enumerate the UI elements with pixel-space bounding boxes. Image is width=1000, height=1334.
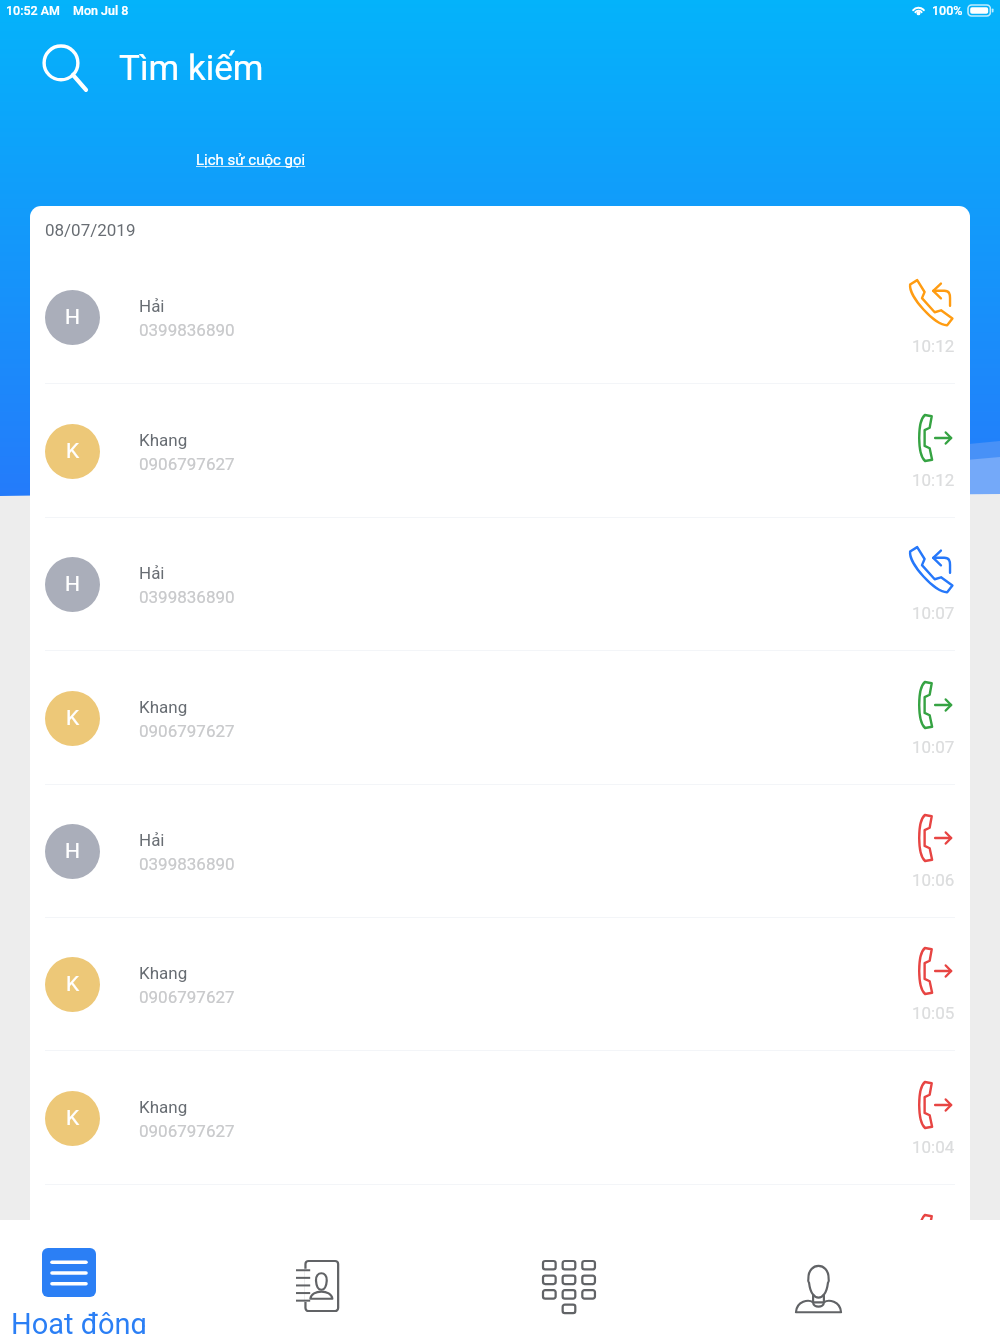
staticText: Khang [139, 430, 188, 450]
button[interactable]: K [30, 652, 970, 785]
staticText: Khang [139, 963, 188, 983]
button[interactable]: K [30, 1185, 970, 1220]
button[interactable]: Profile [795, 1220, 842, 1334]
staticText: H [65, 572, 80, 597]
staticText: Hải [139, 830, 165, 850]
button[interactable]: H [30, 785, 970, 918]
staticText: 0906797627 [139, 1121, 235, 1141]
staticText: 10:12 [912, 470, 955, 490]
button[interactable]: Keypad [543, 1220, 595, 1334]
staticText: Lịch sử cuộc gọi [196, 151, 306, 169]
button[interactable]: Lịch sử cuộc gọi [196, 151, 306, 169]
staticText: 0906797627 [139, 987, 235, 1007]
staticText: 10:52 AM [6, 3, 61, 18]
button[interactable]: H [30, 518, 970, 651]
staticText: Hải [139, 296, 165, 316]
button[interactable]: Tìm kiếm [0, 33, 1000, 103]
staticText: K [66, 1106, 80, 1131]
staticText: 10:07 [912, 603, 955, 623]
button[interactable]: H [30, 251, 970, 384]
staticText: Hải [139, 563, 165, 583]
staticText: 10:05 [912, 1003, 955, 1023]
staticText: Khang [139, 697, 188, 717]
staticText: H [65, 305, 80, 330]
staticText: 10:07 [912, 737, 955, 757]
staticText: 10:06 [912, 870, 955, 890]
staticText: H [65, 839, 80, 864]
staticText: K [66, 972, 80, 997]
staticText: 100% [932, 3, 963, 18]
staticText: 10:04 [912, 1137, 955, 1157]
staticText: 08/07/2019 [45, 220, 136, 240]
staticText: K [66, 706, 80, 731]
button[interactable]: Hoạt động [0, 1220, 250, 1334]
staticText: 0399836890 [139, 854, 235, 874]
button[interactable]: K [30, 385, 970, 518]
staticText: 0399836890 [139, 320, 235, 340]
button[interactable]: K [30, 918, 970, 1051]
button[interactable]: K [30, 1052, 970, 1185]
staticText: Khang [139, 1097, 188, 1117]
staticText: Tìm kiếm [119, 48, 264, 89]
staticText: 0906797627 [139, 721, 235, 741]
staticText: K [66, 439, 80, 464]
button[interactable]: Contacts [296, 1220, 339, 1334]
staticText: 0906797627 [139, 454, 235, 474]
staticText: Hoạt động [11, 1307, 147, 1334]
staticText: 10:12 [912, 336, 955, 356]
staticText: Mon Jul 8 [73, 3, 129, 18]
staticText: 0399836890 [139, 587, 235, 607]
